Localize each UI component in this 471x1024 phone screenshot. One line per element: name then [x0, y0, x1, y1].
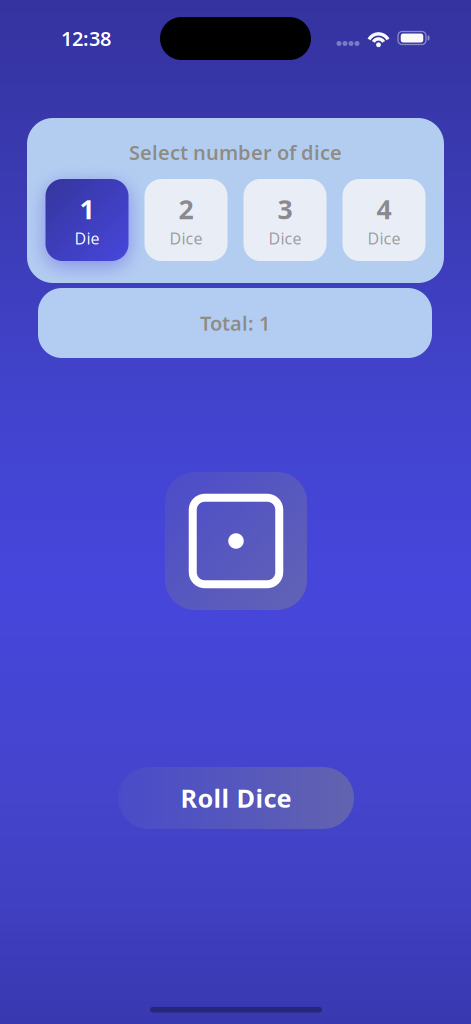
staticText: Roll Dice	[180, 781, 291, 815]
staticText: 12:38	[61, 25, 111, 52]
button[interactable]: 3	[243, 179, 326, 261]
staticText: 1	[79, 191, 94, 227]
staticText: Dice	[169, 228, 202, 249]
staticText: 4	[376, 191, 391, 227]
button[interactable]: Roll Dice	[118, 767, 354, 829]
staticText: 2	[178, 191, 193, 227]
staticText: 3	[277, 191, 292, 227]
button[interactable]: 1	[45, 179, 128, 261]
staticText: Dice	[367, 228, 400, 249]
staticText: Total: 1	[200, 310, 270, 336]
button[interactable]: 4	[342, 179, 425, 261]
staticText: Select number of dice	[129, 139, 342, 166]
staticText: Dice	[268, 228, 301, 249]
button[interactable]: 2	[144, 179, 227, 261]
staticText: Die	[74, 228, 99, 249]
